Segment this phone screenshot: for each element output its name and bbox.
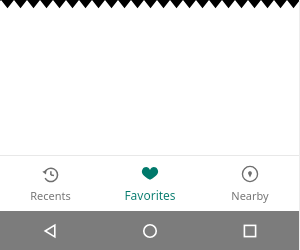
button[interactable]: Favorites bbox=[100, 156, 200, 211]
button[interactable]: Recents bbox=[0, 156, 100, 211]
button[interactable]: Nearby bbox=[200, 156, 300, 211]
staticText: Recents bbox=[30, 188, 71, 203]
button[interactable]: Back bbox=[0, 211, 100, 250]
button[interactable]: Recent apps bbox=[200, 211, 300, 250]
staticText: Nearby bbox=[231, 188, 269, 203]
staticText: Favorites bbox=[124, 187, 176, 203]
button[interactable]: Home bbox=[100, 211, 200, 250]
